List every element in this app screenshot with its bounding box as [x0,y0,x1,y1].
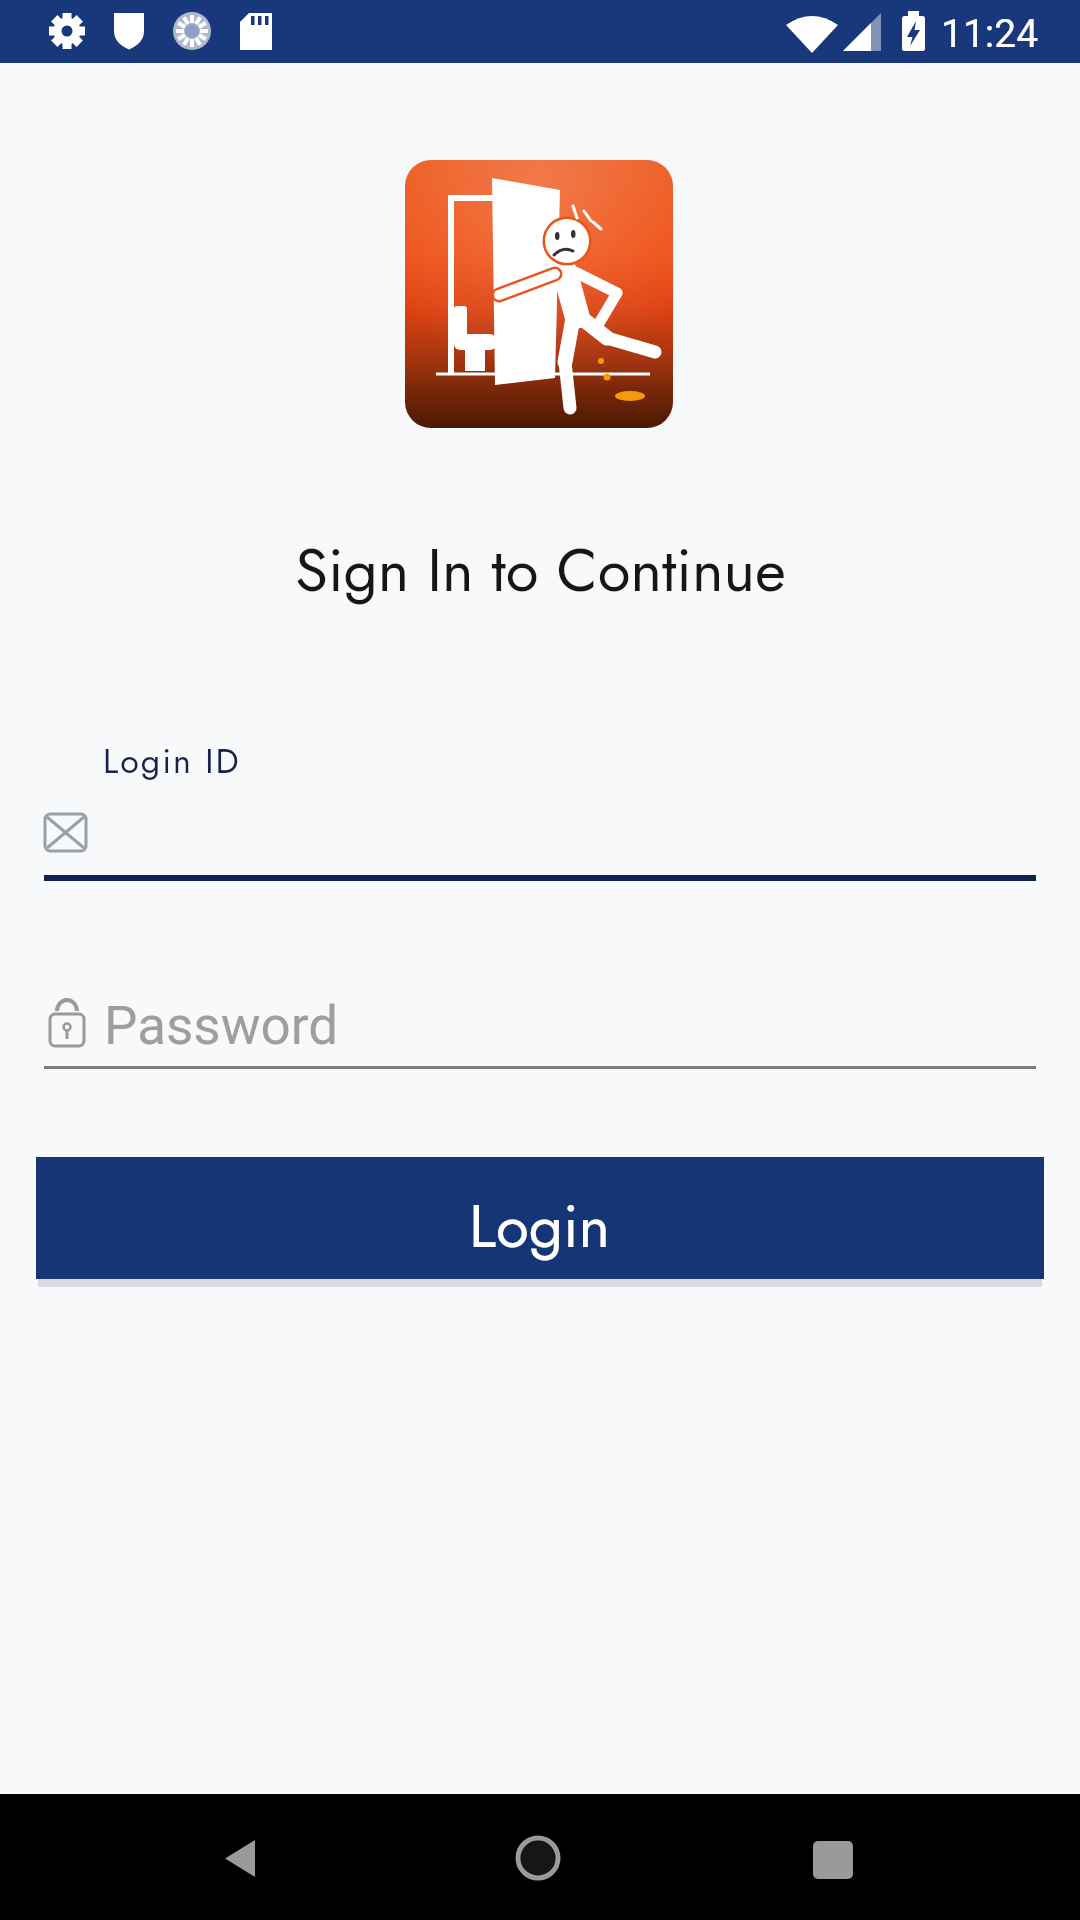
button[interactable] [44,985,1036,1070]
staticText: 11:24 [941,11,1039,57]
button[interactable] [44,790,1036,882]
button[interactable] [180,1814,330,1904]
staticText: Sign In to Continue [295,527,786,614]
button[interactable] [465,1814,615,1904]
staticText: Login ID [103,737,241,786]
staticText: Login [469,1183,611,1270]
button[interactable]: Login [36,1157,1044,1279]
button[interactable] [755,1814,905,1904]
staticText: Password [104,995,339,1057]
